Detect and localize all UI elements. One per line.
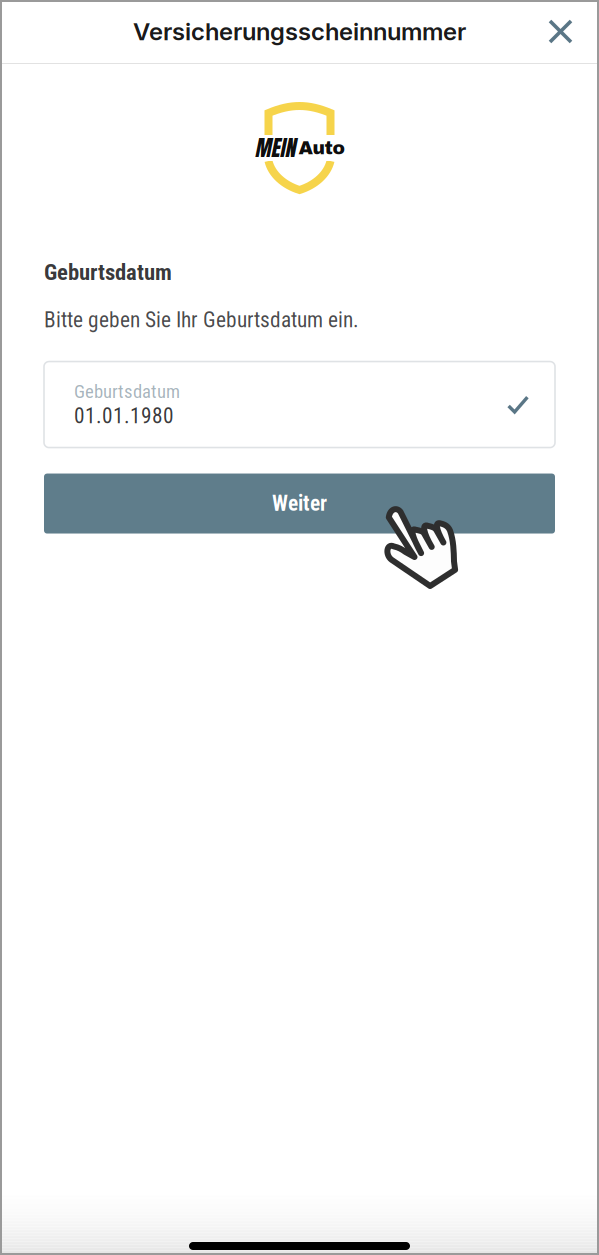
staticText: Geburtsdatum bbox=[74, 381, 180, 402]
staticText: Auto bbox=[298, 138, 344, 158]
button[interactable]: Weiter bbox=[44, 474, 555, 534]
staticText: 01.01.1980 bbox=[74, 403, 174, 428]
button[interactable]: Schließen bbox=[526, 0, 599, 63]
staticText: Versicherungsscheinnummer bbox=[133, 17, 466, 46]
staticText: MEIN bbox=[254, 132, 295, 164]
staticText: Geburtsdatum bbox=[44, 259, 172, 286]
staticText: Weiter bbox=[272, 491, 327, 516]
staticText: Bitte geben Sie Ihr Geburtsdatum ein. bbox=[44, 308, 359, 333]
